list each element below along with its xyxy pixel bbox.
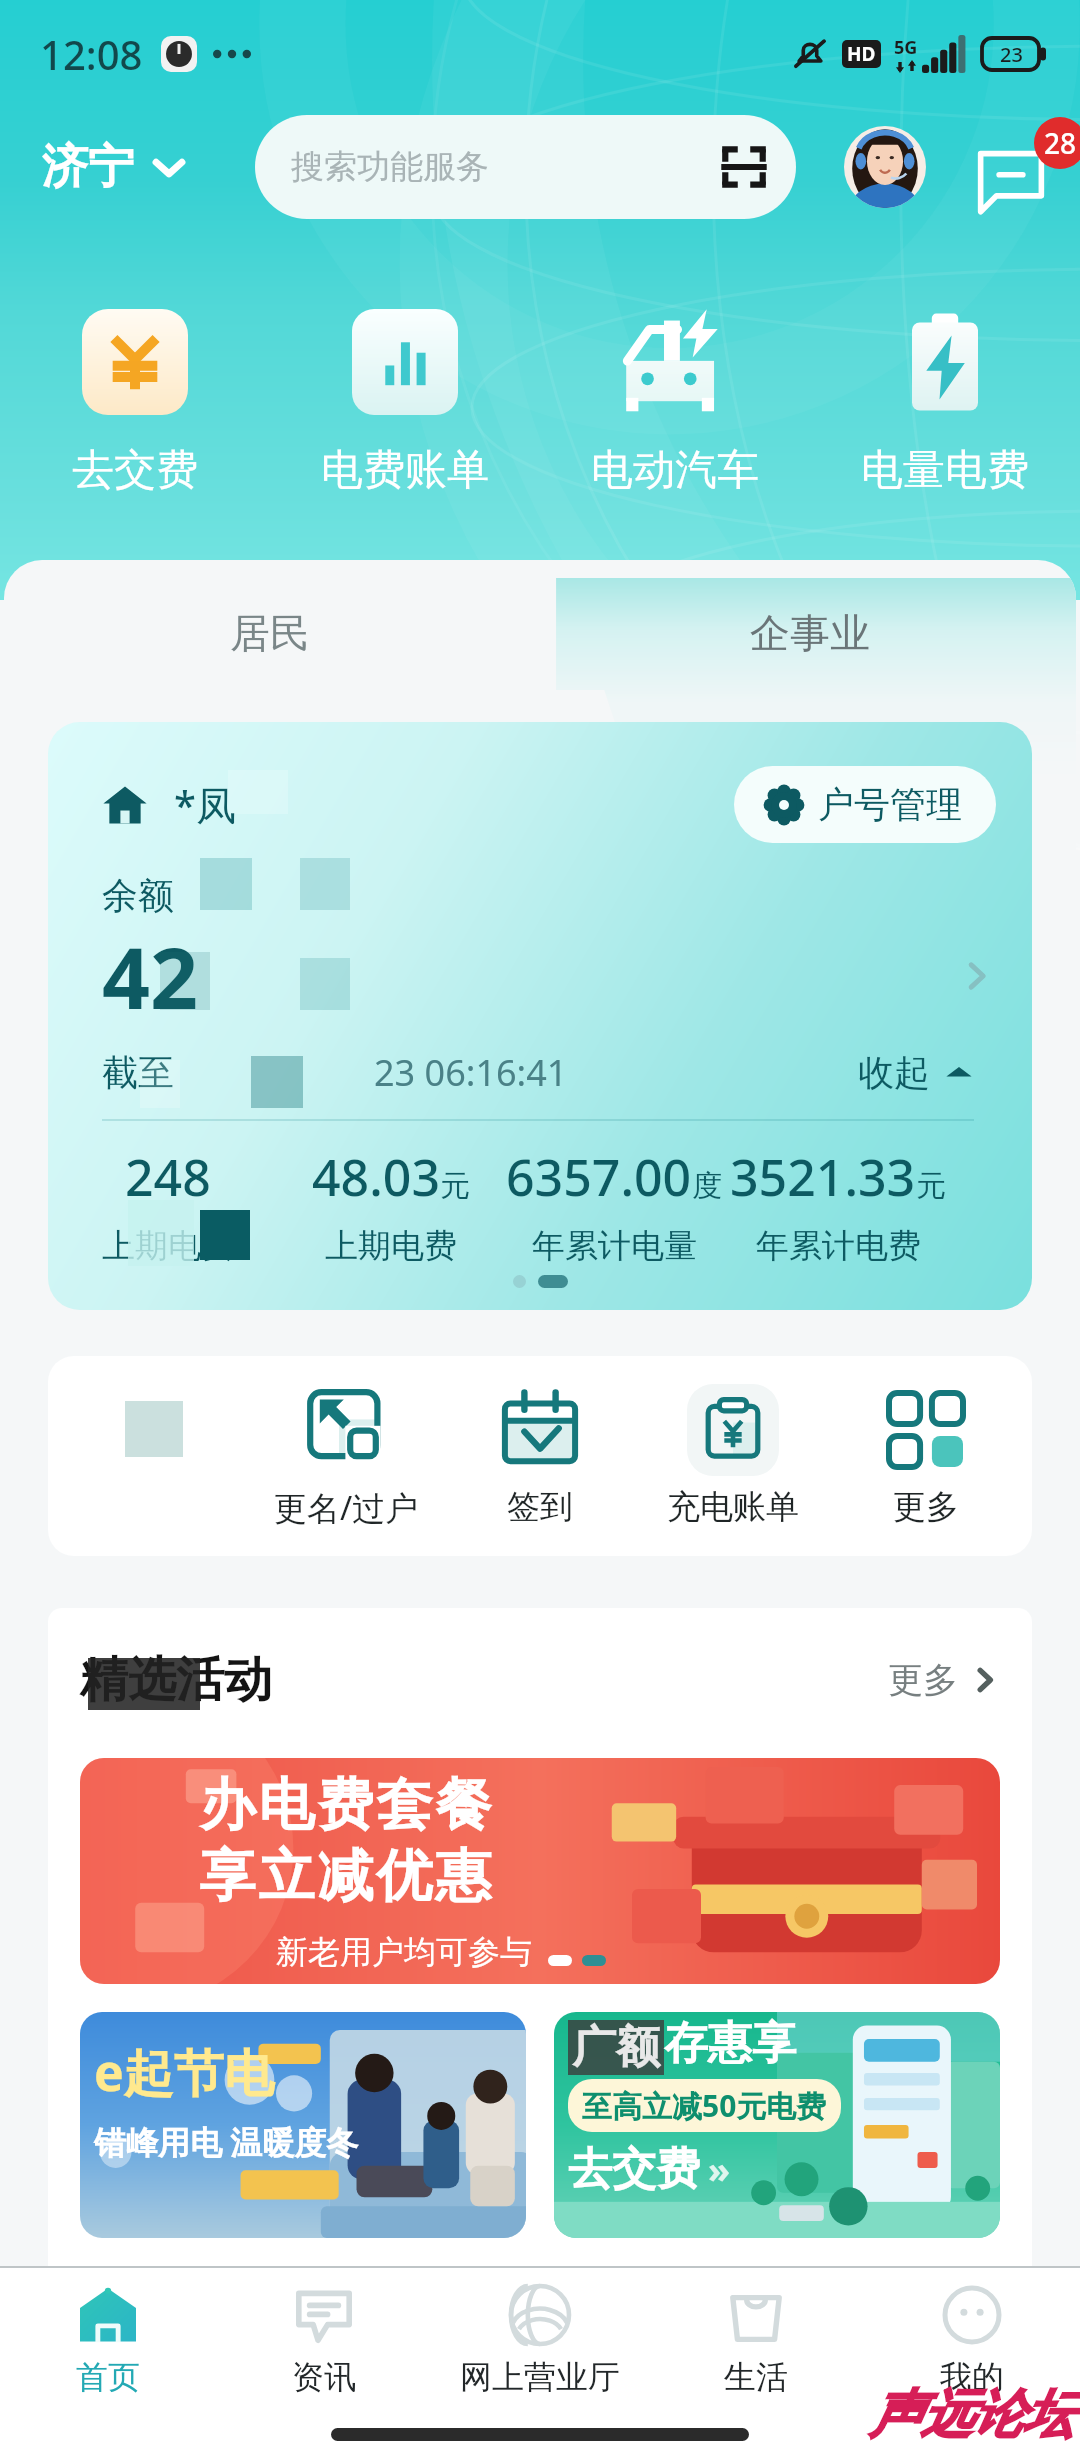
button[interactable]: Scan QR code — [718, 141, 770, 193]
staticText: *凤 — [174, 777, 236, 832]
staticText: 网上营业厅 — [460, 2357, 620, 2397]
button[interactable]: 更多 — [829, 1384, 1022, 1528]
staticText: 12:08 — [40, 27, 143, 81]
staticText: 去交费 — [568, 2142, 700, 2197]
staticText: 我的 — [940, 2357, 1004, 2397]
button[interactable]: Messages — [978, 121, 1070, 213]
staticText: 声远论坛 — [870, 2382, 1074, 2448]
staticText: 存惠享 — [664, 2016, 796, 2071]
staticText: 上期电费 — [325, 1225, 457, 1267]
button[interactable]: 网上营业厅 — [432, 2268, 648, 2408]
button[interactable]: 广额 — [554, 2012, 1000, 2238]
staticText: 42 — [102, 919, 199, 1033]
button[interactable]: 收起 — [858, 1050, 996, 1095]
staticText: 居民 — [230, 608, 310, 658]
staticText: e起节电 — [94, 2038, 274, 2106]
staticText: 至高立减50元电费 — [582, 2085, 827, 2126]
button[interactable]: 签到 — [443, 1384, 636, 1528]
staticText: 上期电费 — [102, 1225, 234, 1267]
staticText: 元 — [440, 1167, 470, 1205]
staticText: 截至 — [102, 1050, 174, 1095]
button[interactable]: Balance details — [956, 956, 996, 996]
staticText: 更多 — [888, 1658, 958, 1702]
staticText: 首页 — [76, 2357, 140, 2397]
staticText: 新老用户均可参与 — [276, 1932, 532, 1972]
button[interactable]: 资讯 — [216, 2268, 432, 2408]
button[interactable]: 居民 — [0, 578, 540, 688]
button[interactable]: *凤 — [48, 722, 1032, 1310]
staticText: 办电费套餐 — [198, 1770, 493, 1841]
button[interactable]: Service shortcut — [58, 1383, 250, 1530]
button[interactable]: 生活 — [648, 2268, 864, 2408]
staticText: 户号管理 — [818, 782, 962, 827]
button[interactable]: 电费账单 — [270, 306, 540, 497]
staticText: 充电账单 — [667, 1486, 799, 1528]
button[interactable]: 户号管理 — [734, 766, 996, 843]
staticText: 余额 — [102, 873, 174, 918]
staticText: 资讯 — [292, 2357, 356, 2397]
staticText: 3521.33 — [730, 1143, 916, 1211]
staticText: 签到 — [507, 1486, 573, 1528]
staticText: 23 — [1000, 41, 1023, 68]
staticText: 精选活动 — [80, 1650, 272, 1710]
button[interactable]: 我的 — [864, 2268, 1080, 2408]
button[interactable]: 更多 — [888, 1658, 1000, 1702]
staticText: 享立减优惠 — [198, 1841, 493, 1912]
staticText: » — [708, 2145, 731, 2194]
staticText: 去交费 — [72, 444, 198, 497]
staticText: 广额 — [572, 2020, 660, 2075]
button[interactable]: 搜索功能服务 — [255, 115, 796, 219]
staticText: 电费账单 — [321, 444, 489, 497]
staticText: 搜索功能服务 — [291, 146, 489, 188]
staticText: 济宁 — [42, 138, 134, 196]
staticText: 电动汽车 — [591, 444, 759, 497]
button[interactable]: e起节电 — [80, 2012, 526, 2238]
button[interactable]: 去交费 — [0, 306, 270, 497]
button[interactable]: 济宁 — [42, 138, 186, 196]
staticText: 企事业 — [750, 608, 870, 658]
staticText: HD — [847, 41, 876, 67]
staticText: 电量电费 — [861, 444, 1029, 497]
staticText: 错峰用电 温暖度冬 — [94, 2120, 359, 2164]
button[interactable]: 电量电费 — [810, 306, 1080, 497]
button[interactable]: 首页 — [0, 2268, 216, 2408]
staticText: 收起 — [858, 1050, 930, 1095]
staticText: 度 — [692, 1167, 722, 1205]
button[interactable]: 充电账单 — [636, 1384, 829, 1528]
staticText: 6357.00 — [506, 1143, 692, 1211]
button[interactable]: Customer service — [844, 126, 926, 208]
staticText: 生活 — [724, 2357, 788, 2397]
staticText: 48.03 — [312, 1143, 440, 1211]
staticText: 23 06:16:41 — [374, 1048, 568, 1097]
staticText: 年累计电费 — [756, 1225, 921, 1267]
staticText: 更多 — [893, 1486, 959, 1528]
staticText: 年累计电量 — [532, 1225, 697, 1267]
staticText: 5G — [894, 35, 918, 60]
button[interactable]: 更名/过户 — [250, 1383, 443, 1530]
staticText: 248 — [125, 1143, 211, 1211]
staticText: 更名/过户 — [274, 1485, 419, 1530]
button[interactable]: 办电费套餐 — [80, 1758, 1000, 1984]
staticText: 元 — [916, 1167, 946, 1205]
staticText: 28 — [1044, 124, 1077, 162]
button[interactable]: 企事业 — [540, 578, 1080, 688]
button[interactable]: 电动汽车 — [540, 306, 810, 497]
